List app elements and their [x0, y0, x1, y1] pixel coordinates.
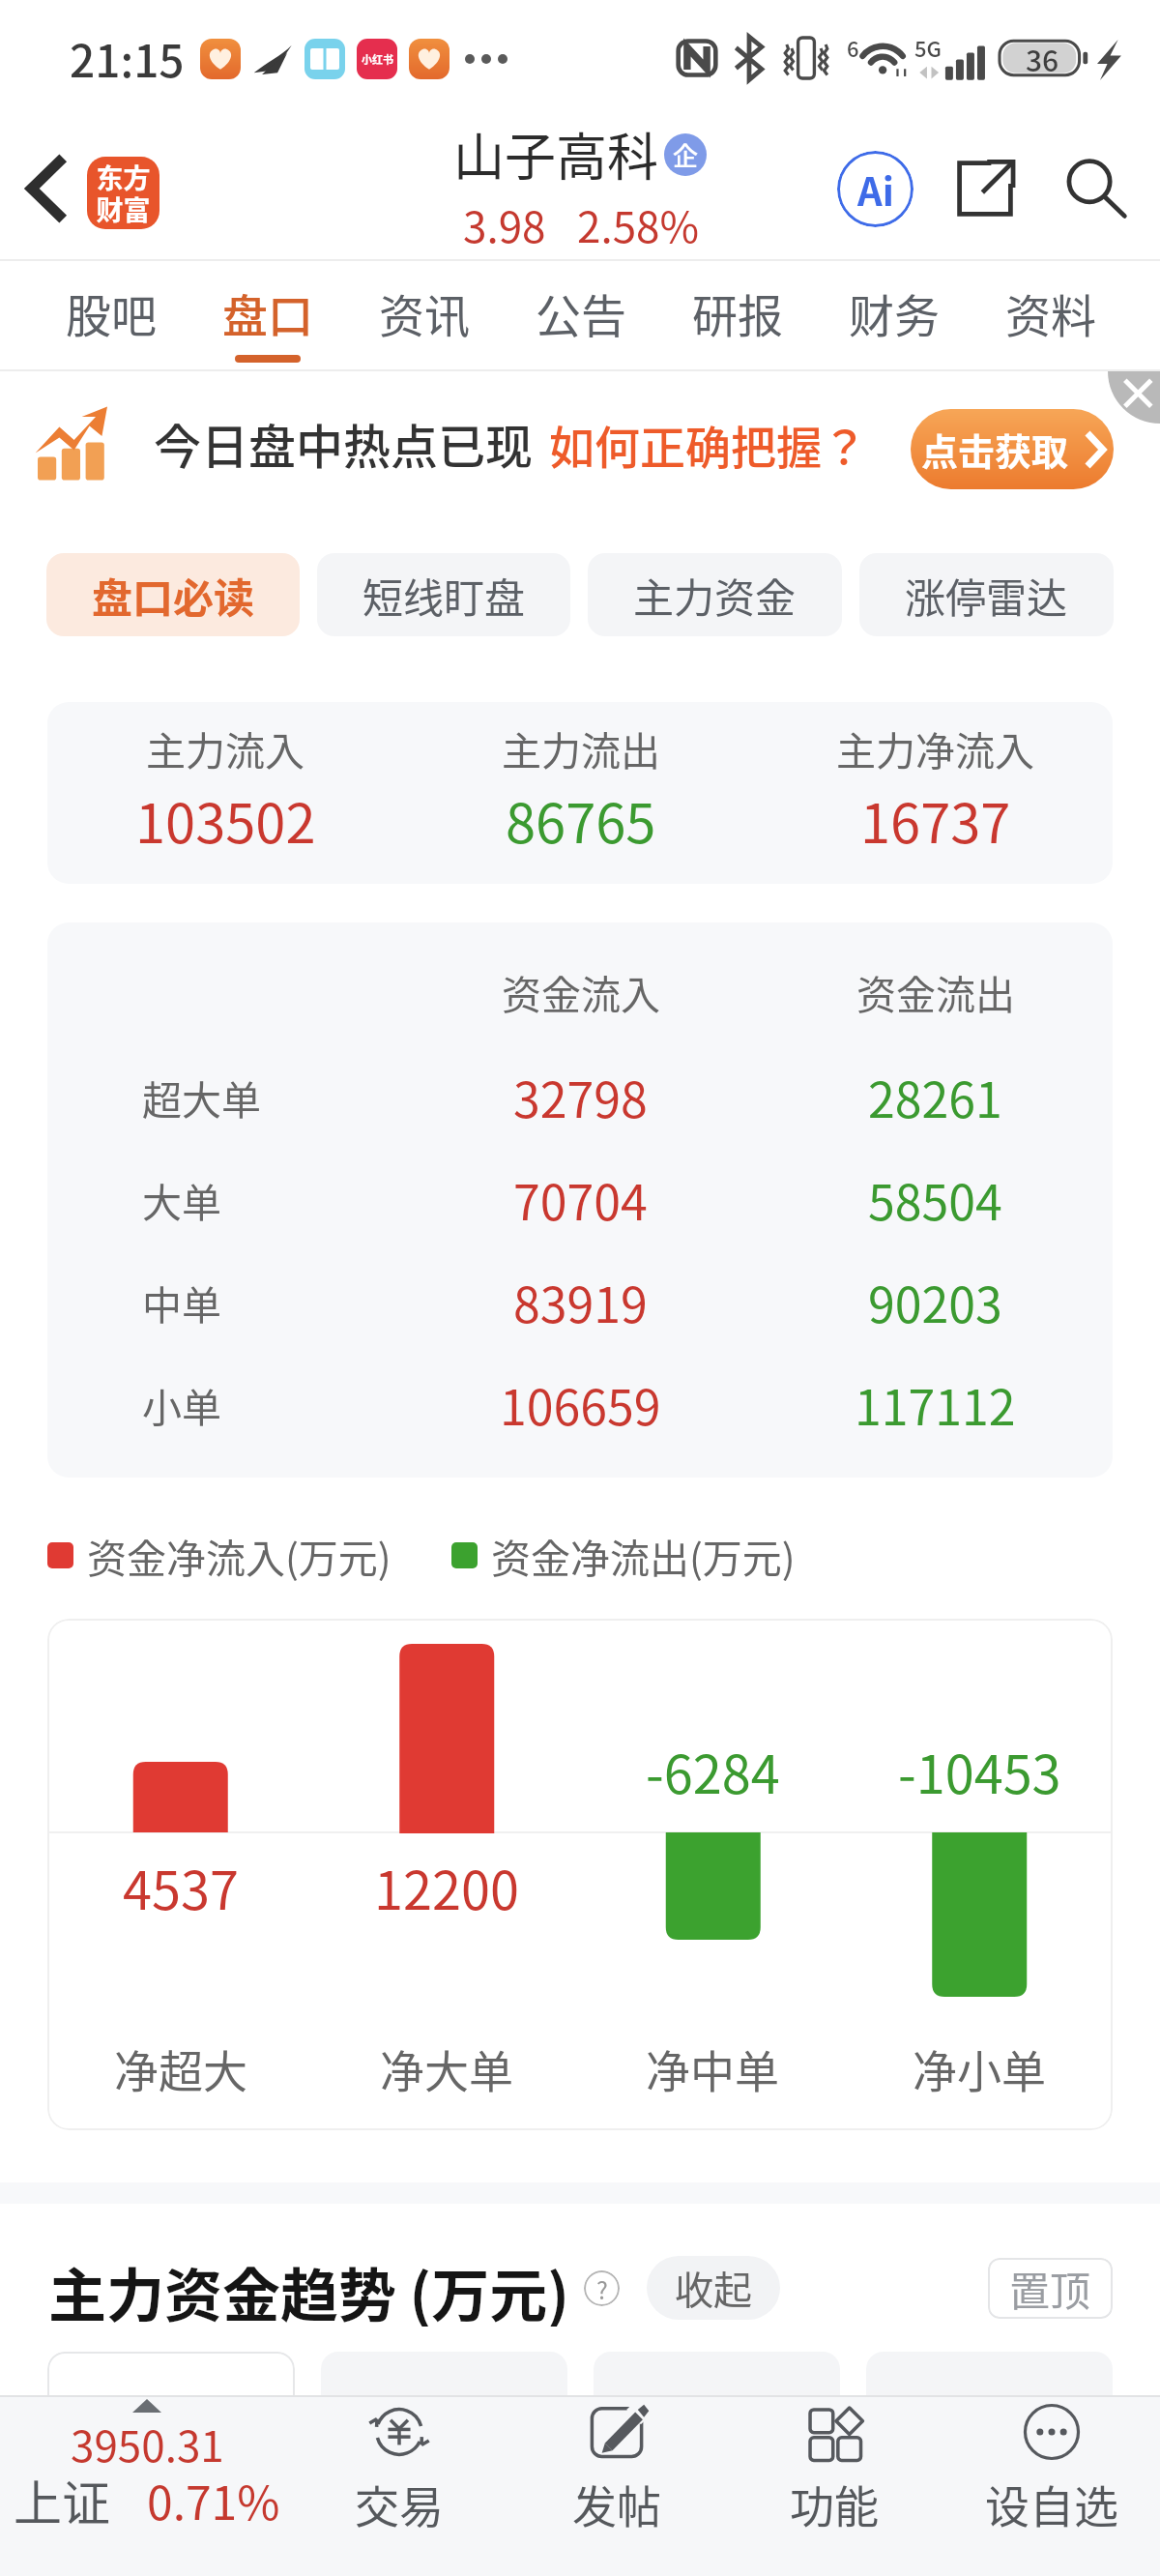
staticText: 0.71%	[147, 2466, 280, 2533]
button[interactable]: East Money	[87, 157, 159, 229]
staticText: 山子高科	[453, 117, 658, 191]
staticText: 交易	[355, 2472, 444, 2536]
button[interactable]: 点击获取	[911, 409, 1114, 489]
staticText: 今日盘中热点已现	[154, 409, 534, 478]
staticText: 3.98	[463, 193, 546, 255]
button[interactable]: 财务	[816, 261, 972, 371]
staticText: 涨停雷达	[905, 566, 1068, 625]
staticText: 超大单	[142, 1068, 261, 1126]
button[interactable]: 涨停雷达	[859, 553, 1114, 636]
staticText: 资金净流出(万元)	[491, 1527, 796, 1584]
staticText: 公告	[536, 279, 626, 345]
staticText: 如何正确把握？	[549, 411, 867, 477]
button[interactable]	[321, 2352, 567, 2435]
staticText: 资金流入	[502, 963, 660, 1020]
staticText: 中单	[142, 1273, 221, 1331]
staticText: Ai	[857, 161, 894, 218]
button[interactable]: 主力资金	[588, 553, 842, 636]
staticText: 收起	[675, 2260, 752, 2316]
button[interactable]: AI assistant	[820, 133, 930, 244]
button[interactable]: 股吧	[33, 261, 189, 371]
staticText: 净大单	[380, 2036, 513, 2101]
button[interactable]: 3950.31	[0, 2397, 290, 2576]
staticText: 2.58%	[577, 193, 700, 255]
staticText: 16737	[860, 780, 1011, 859]
staticText: 资料	[1005, 279, 1096, 345]
staticText: 主力资金趋势 (万元)	[48, 2249, 569, 2327]
staticText: 财务	[849, 279, 940, 345]
staticText: 股吧	[66, 279, 157, 345]
staticText: -10453	[898, 1733, 1061, 1808]
staticText: 主力净流入	[836, 719, 1034, 776]
staticText: 4537	[123, 1849, 239, 1924]
button[interactable]: Back	[0, 143, 91, 234]
staticText: 5G	[914, 32, 942, 63]
button[interactable]	[594, 2352, 840, 2435]
button[interactable]: 收起	[647, 2256, 780, 2320]
staticText: 小红书	[362, 51, 393, 67]
staticText: 103502	[135, 780, 316, 859]
staticText: 功能	[790, 2472, 879, 2536]
staticText: 上证	[14, 2465, 110, 2534]
staticText: 资金流出	[856, 963, 1015, 1020]
staticText: 21:15	[70, 26, 185, 91]
staticText: 83919	[513, 1267, 648, 1336]
staticText: 6	[847, 32, 859, 63]
staticText: 净中单	[646, 2036, 779, 2101]
staticText: ?	[596, 2271, 608, 2306]
staticText: 86765	[506, 780, 656, 859]
staticText: 70704	[513, 1164, 648, 1234]
staticText: 主力流出	[502, 719, 660, 776]
staticText: -6284	[646, 1733, 780, 1808]
staticText: 58504	[868, 1164, 1002, 1234]
button[interactable]: Help	[584, 2270, 620, 2306]
staticText: 盘口必读	[92, 566, 255, 625]
staticText: 净超大	[114, 2036, 247, 2101]
button[interactable]: 交易	[290, 2397, 507, 2576]
staticText: 净小单	[913, 2036, 1046, 2101]
staticText: 3950.31	[71, 2413, 224, 2474]
button[interactable]: 发帖	[507, 2397, 725, 2576]
staticText: 90203	[868, 1267, 1002, 1336]
staticText: 研报	[692, 279, 783, 345]
staticText: 12200	[374, 1849, 519, 1924]
button[interactable]: 功能	[725, 2397, 942, 2576]
button[interactable]: Search	[1040, 133, 1150, 244]
staticText: 小单	[142, 1376, 221, 1433]
staticText: 36	[1026, 38, 1059, 79]
staticText: 短线盯盘	[362, 566, 526, 625]
button[interactable]: 置顶	[988, 2258, 1113, 2319]
button[interactable]: 公告	[503, 261, 659, 371]
staticText: 资讯	[379, 279, 470, 345]
staticText: 106659	[500, 1369, 661, 1439]
staticText: 发帖	[572, 2472, 661, 2536]
staticText: 28261	[868, 1062, 1002, 1131]
staticText: 117112	[855, 1369, 1016, 1439]
staticText: 企	[673, 136, 699, 173]
button[interactable]: 资讯	[346, 261, 503, 371]
staticText: 置顶	[1009, 2259, 1091, 2318]
staticText: 资金净流入(万元)	[87, 1527, 391, 1584]
staticText: 点击获取	[921, 423, 1069, 476]
staticText: 东方 财富	[96, 158, 151, 229]
button[interactable]: 短线盯盘	[317, 553, 570, 636]
staticText: 设自选	[985, 2472, 1118, 2536]
staticText: 32798	[513, 1062, 648, 1131]
button[interactable]: 盘口必读	[46, 553, 300, 636]
staticText: 主力资金	[633, 566, 797, 625]
staticText: 大单	[142, 1171, 221, 1228]
button[interactable]	[866, 2352, 1113, 2435]
button[interactable]: 盘口	[189, 261, 346, 371]
button[interactable]: 设自选	[942, 2397, 1160, 2576]
staticText: 主力流入	[146, 719, 304, 776]
button[interactable]: 资料	[972, 261, 1129, 371]
button[interactable]: Close	[1108, 371, 1160, 424]
staticText: 盘口	[222, 279, 313, 345]
button[interactable]	[47, 2352, 295, 2435]
button[interactable]: Share	[930, 133, 1040, 244]
button[interactable]: 研报	[659, 261, 816, 371]
